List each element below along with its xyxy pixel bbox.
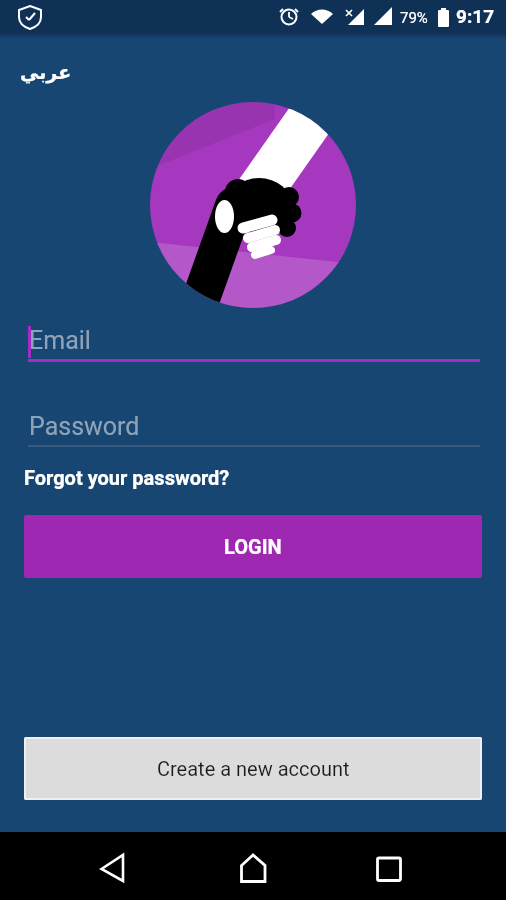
button[interactable]: Forgot your password? bbox=[24, 466, 230, 489]
button[interactable] bbox=[168, 832, 337, 900]
staticText: Email bbox=[29, 326, 91, 355]
staticText: عربي bbox=[20, 61, 72, 83]
staticText: LOGIN bbox=[224, 535, 282, 558]
staticText: 9:17 bbox=[456, 5, 495, 27]
button[interactable] bbox=[337, 832, 506, 900]
staticText: Password bbox=[29, 412, 140, 441]
button[interactable] bbox=[0, 832, 168, 900]
button[interactable]: LOGIN bbox=[24, 515, 482, 578]
staticText: Forgot your password? bbox=[24, 466, 230, 489]
staticText: Create a new account bbox=[157, 757, 350, 780]
staticText: 79% bbox=[400, 9, 428, 27]
button[interactable]: عربي bbox=[20, 61, 72, 83]
button[interactable]: Create a new account bbox=[24, 737, 482, 800]
